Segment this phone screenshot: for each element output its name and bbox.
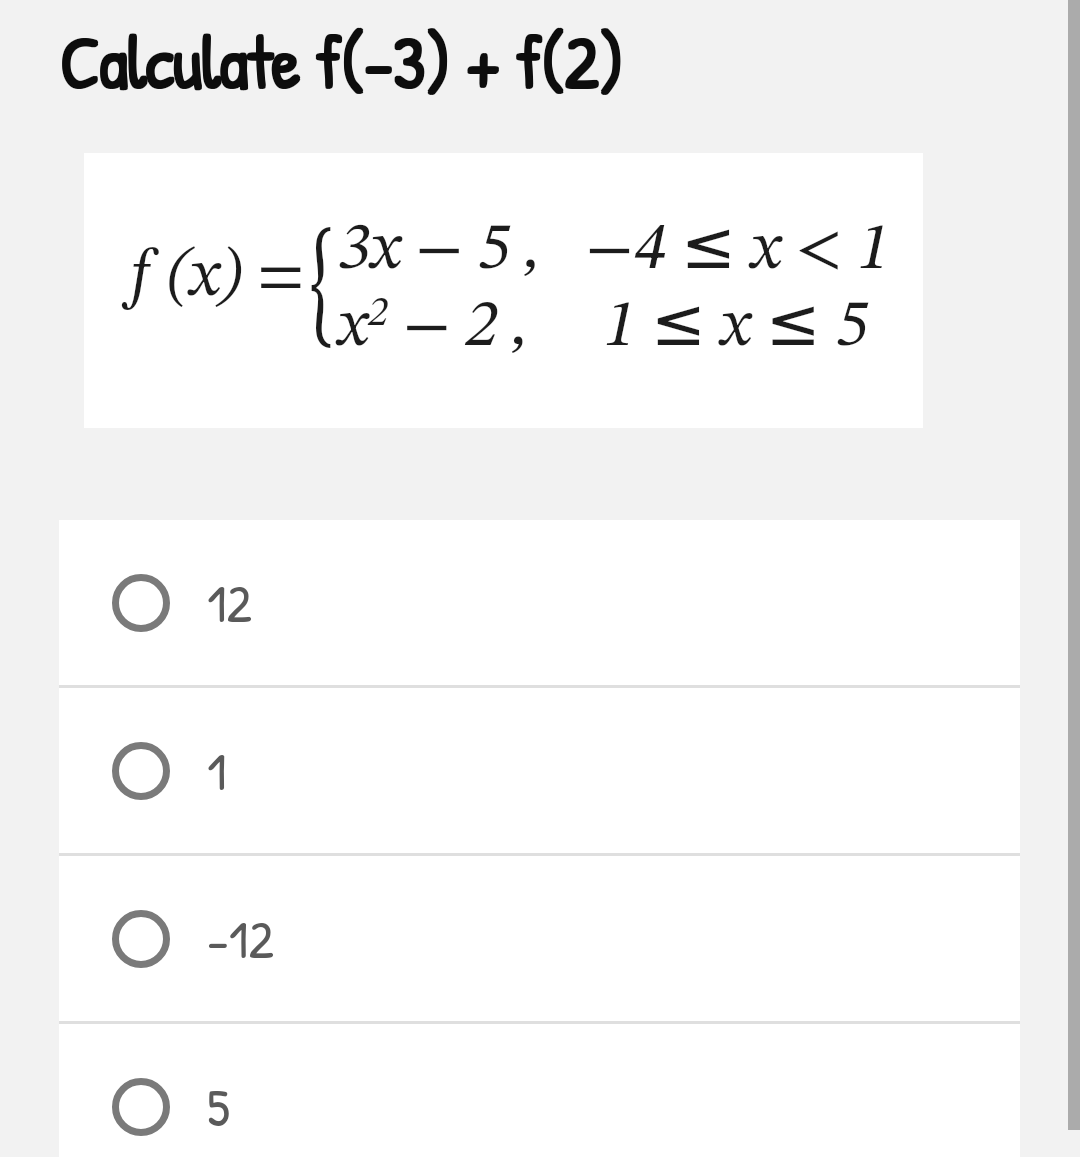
staticText: Calculate f(-3) + f(2) — [61, 10, 625, 110]
staticText: 5 — [207, 1070, 230, 1143]
staticText: Calculate f(-3) + f(2) — [59, 10, 623, 110]
staticText: 12 — [207, 566, 252, 639]
staticText: 1 — [207, 734, 227, 807]
staticText: f (x) = — [130, 245, 305, 311]
staticText: x2 − 2 , 1 ≤ x ≤ 5 — [338, 284, 869, 361]
staticText: Calculate f(-3) + f(2) — [59, 12, 623, 112]
staticText: 3x − 5 , −4 ≤ x < 1 — [338, 207, 890, 284]
staticText: -12 — [207, 902, 274, 975]
staticText: { — [309, 222, 335, 354]
button[interactable]: 5 — [59, 1024, 1020, 1157]
button[interactable]: 1 — [59, 688, 1020, 853]
button[interactable]: 12 — [59, 520, 1020, 685]
staticText: Calculate f(-3) + f(2) — [61, 12, 625, 112]
button[interactable]: -12 — [59, 856, 1020, 1021]
